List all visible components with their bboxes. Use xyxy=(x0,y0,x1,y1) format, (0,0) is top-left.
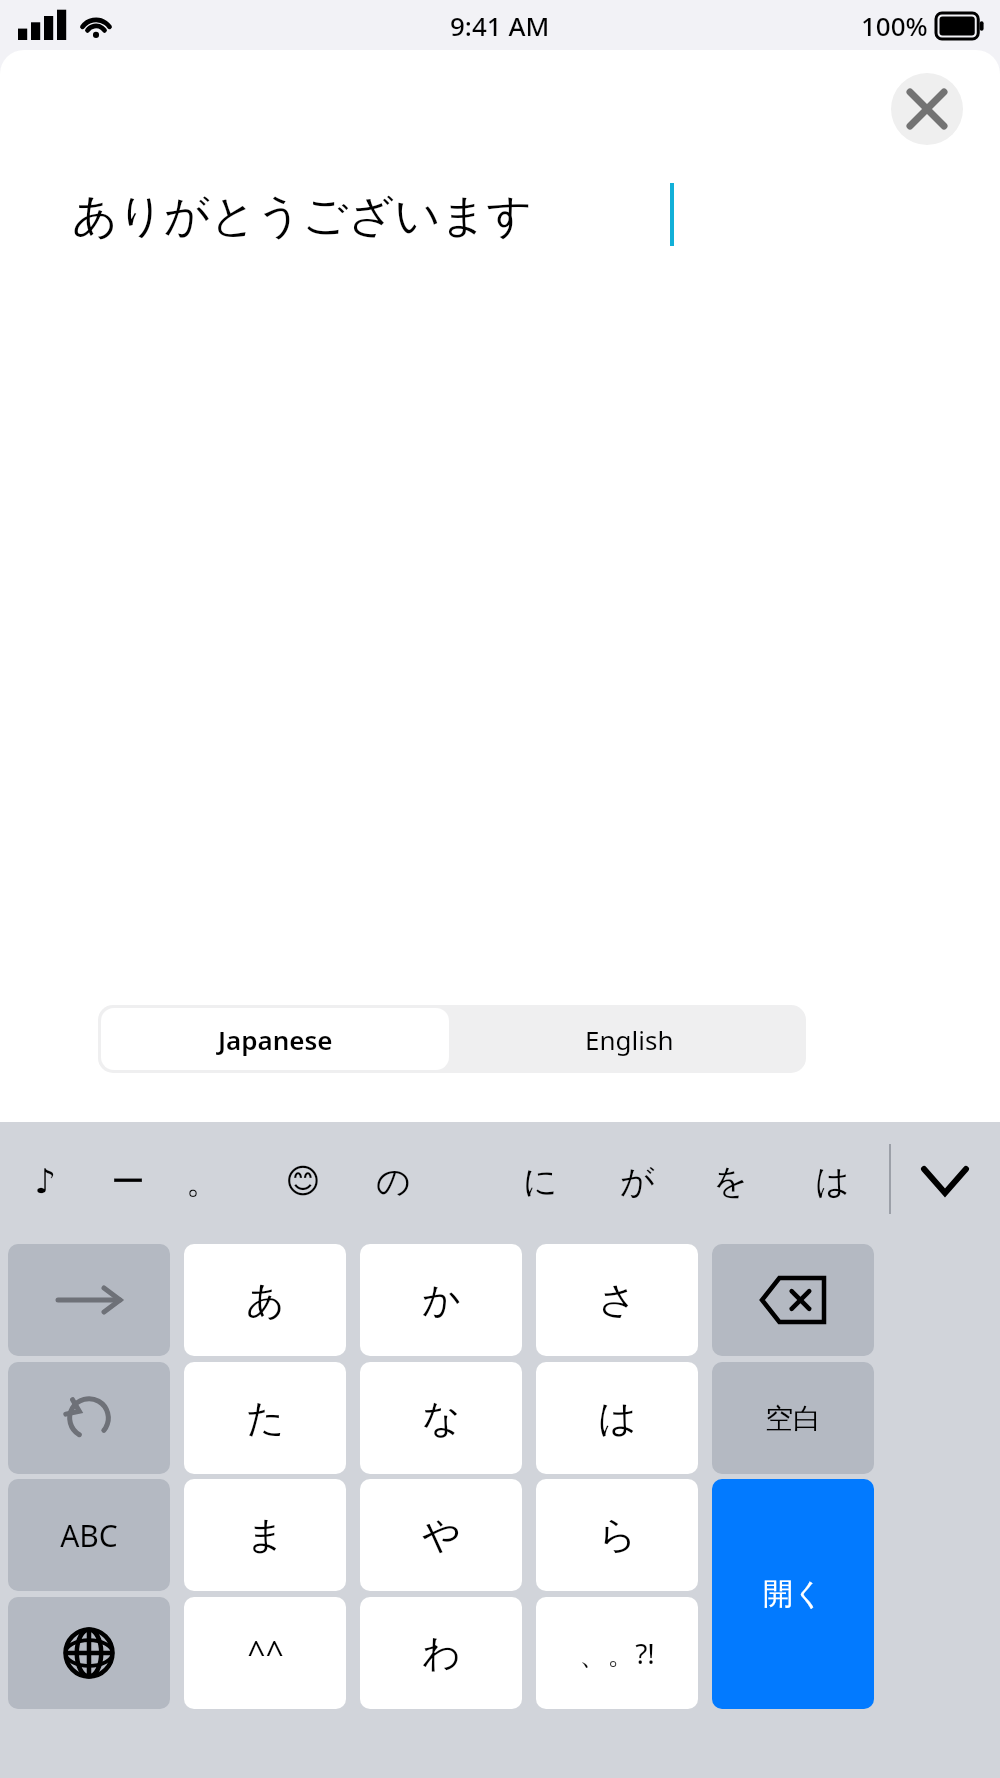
button[interactable]: か xyxy=(360,1244,522,1356)
button[interactable]: な xyxy=(360,1362,522,1474)
button[interactable]: を xyxy=(688,1122,772,1240)
staticText: 100% xyxy=(861,8,928,43)
button[interactable]: Undo xyxy=(8,1362,170,1474)
button[interactable]: た xyxy=(184,1362,346,1474)
button[interactable]: ー xyxy=(86,1122,170,1240)
button[interactable]: Close xyxy=(891,73,963,145)
button[interactable]: Japanese xyxy=(101,1008,449,1070)
staticText: Japanese xyxy=(218,1022,333,1057)
staticText: ♪ xyxy=(34,1161,56,1201)
button[interactable]: ABC xyxy=(8,1479,170,1591)
staticText: か xyxy=(422,1276,461,1324)
button[interactable]: 空白 xyxy=(712,1362,874,1474)
other: Switch keyboard xyxy=(8,1597,170,1709)
button[interactable]: ら xyxy=(536,1479,698,1591)
staticText: 、。?! xyxy=(579,1634,655,1672)
button[interactable]: の xyxy=(351,1122,435,1240)
staticText: 9:41 AM xyxy=(450,8,550,43)
staticText: English xyxy=(585,1022,674,1057)
button[interactable]: Next candidate xyxy=(8,1244,170,1356)
button[interactable]: 開く xyxy=(712,1479,874,1709)
staticText: ら xyxy=(598,1511,637,1559)
staticText: に xyxy=(523,1160,558,1203)
staticText: ^^ xyxy=(247,1631,284,1675)
staticText: は xyxy=(598,1394,637,1442)
staticText: た xyxy=(246,1394,285,1442)
staticText: 。 xyxy=(186,1160,220,1203)
staticText: さ xyxy=(598,1276,637,1324)
button[interactable]: 。 xyxy=(161,1122,245,1240)
button[interactable]: さ xyxy=(536,1244,698,1356)
staticText: を xyxy=(713,1160,748,1203)
button[interactable]: 、。?! xyxy=(536,1597,698,1709)
staticText: や xyxy=(422,1511,461,1559)
other: Next candidate xyxy=(8,1244,170,1356)
button[interactable]: Delete xyxy=(712,1244,874,1356)
staticText: ABC xyxy=(60,1515,118,1556)
staticText: わ xyxy=(422,1629,461,1677)
staticText: あ xyxy=(246,1276,285,1324)
other: Delete xyxy=(712,1244,874,1356)
button[interactable]: ♪ xyxy=(3,1122,87,1240)
button[interactable]: に xyxy=(498,1122,582,1240)
staticText: な xyxy=(422,1394,461,1442)
staticText: 😊 xyxy=(285,1161,321,1201)
button[interactable]: は xyxy=(790,1122,874,1240)
button[interactable]: Switch keyboard xyxy=(8,1597,170,1709)
button[interactable]: わ xyxy=(360,1597,522,1709)
button[interactable]: English xyxy=(452,1005,806,1073)
staticText: の xyxy=(376,1160,411,1203)
other: Undo xyxy=(8,1362,170,1474)
staticText: ー xyxy=(111,1160,145,1203)
button[interactable]: ま xyxy=(184,1479,346,1591)
button[interactable]: 😊 xyxy=(261,1122,345,1240)
staticText: ま xyxy=(246,1511,285,1559)
staticText: ありがとうございます xyxy=(72,188,533,245)
button[interactable]: あ xyxy=(184,1244,346,1356)
staticText: は xyxy=(815,1160,850,1203)
button[interactable]: や xyxy=(360,1479,522,1591)
button[interactable]: が xyxy=(595,1122,679,1240)
staticText: 空白 xyxy=(765,1401,821,1436)
button[interactable]: Hide keyboard xyxy=(903,1122,987,1240)
staticText: 開く xyxy=(763,1575,824,1613)
button[interactable]: は xyxy=(536,1362,698,1474)
staticText: が xyxy=(620,1160,655,1203)
button[interactable]: ^^ xyxy=(184,1597,346,1709)
